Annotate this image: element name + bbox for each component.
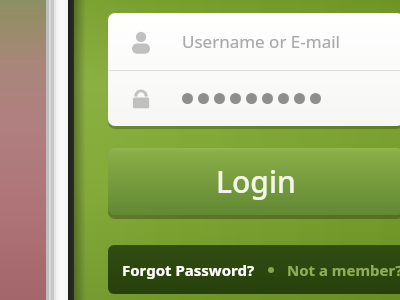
staticText: Login xyxy=(216,161,296,202)
button[interactable]: Username or E-mail field xyxy=(108,13,400,70)
staticText: Forgot Password? xyxy=(122,260,255,280)
button[interactable]: Login xyxy=(108,148,400,215)
staticText: Not a member? xyxy=(287,260,400,280)
button[interactable]: Forgot Password? xyxy=(122,260,255,280)
button[interactable]: Password field xyxy=(108,71,400,126)
staticText: Username or E-mail xyxy=(182,30,340,53)
